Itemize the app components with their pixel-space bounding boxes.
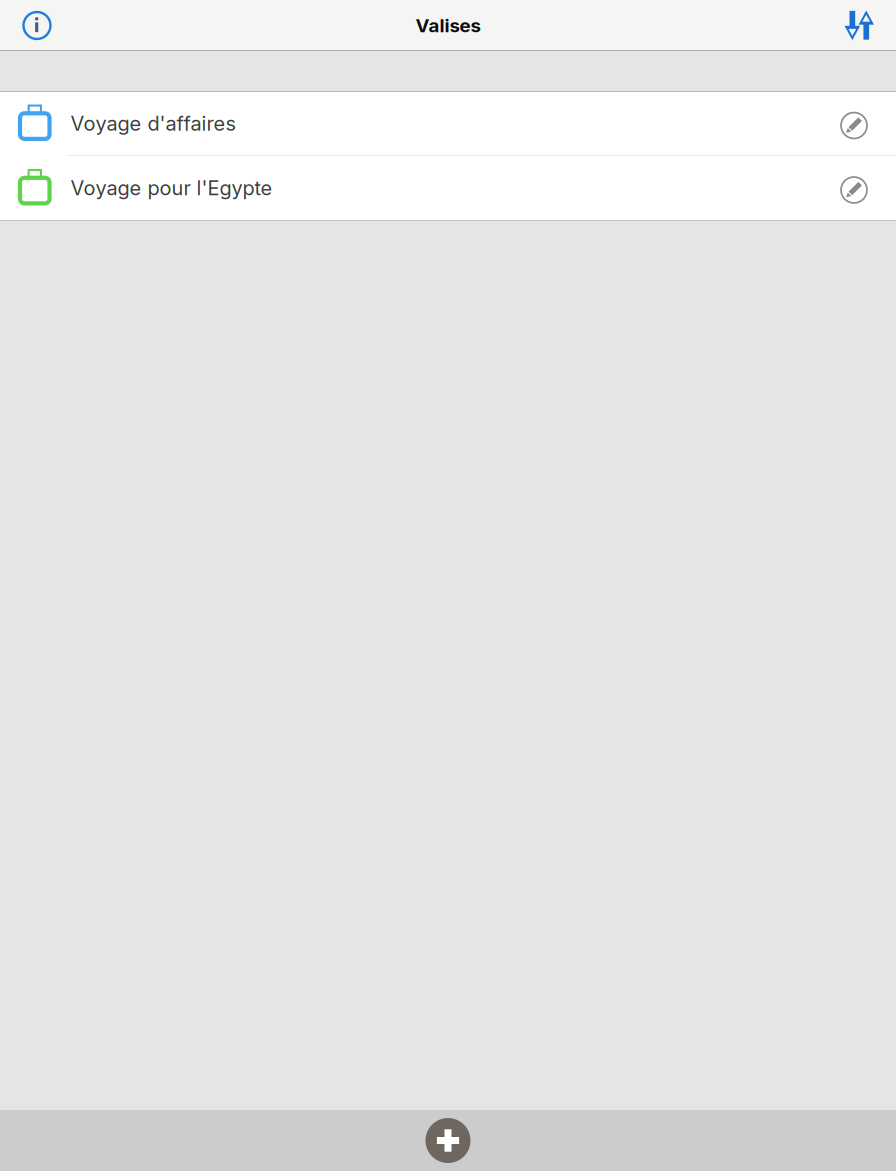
staticText: Voyage pour l'Egypte	[70, 176, 272, 200]
button[interactable]: Voyage pour l'Egypte	[0, 156, 896, 220]
button[interactable]: Ajouter une valise	[417, 1110, 479, 1171]
button[interactable]: Trier	[845, 0, 896, 50]
button[interactable]: Informations	[0, 0, 52, 50]
staticText: Valises	[415, 14, 480, 37]
staticText: Voyage d'affaires	[70, 111, 235, 136]
button[interactable]: Voyage d'affaires	[0, 92, 896, 156]
